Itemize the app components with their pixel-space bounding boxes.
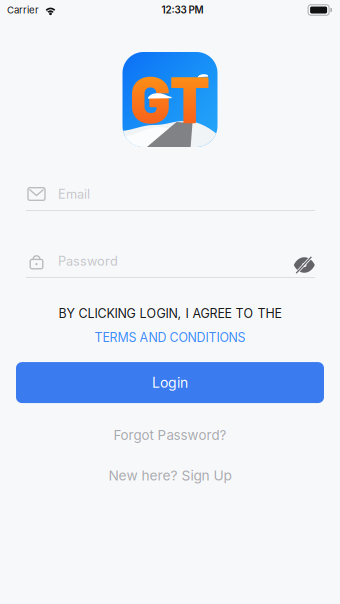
staticText: Forgot Password? bbox=[113, 427, 226, 443]
staticText: Password bbox=[58, 253, 118, 269]
staticText: Carrier bbox=[7, 4, 39, 16]
button[interactable]: Login bbox=[16, 362, 324, 403]
staticText: 12:33 PM bbox=[161, 4, 203, 16]
staticText: BY CLICKING LOGIN, I AGREE TO THE bbox=[58, 306, 281, 321]
staticText: Login bbox=[152, 374, 188, 391]
staticText: New here? Sign Up bbox=[108, 467, 231, 484]
staticText: TERMS AND CONDITIONS bbox=[94, 330, 245, 345]
button[interactable]: Forgot Password? bbox=[103, 424, 236, 446]
staticText: Email bbox=[58, 186, 90, 202]
button[interactable]: New here? Sign Up bbox=[98, 464, 241, 487]
button[interactable]: Show password bbox=[286, 252, 315, 270]
button[interactable]: TERMS AND CONDITIONS bbox=[88, 328, 251, 347]
